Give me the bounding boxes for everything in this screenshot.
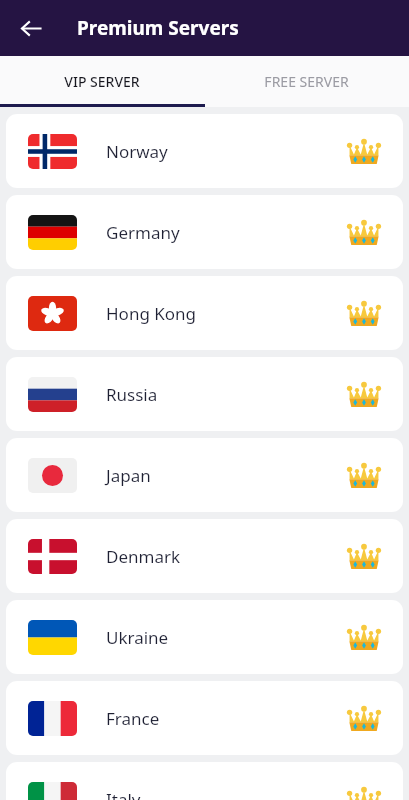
button[interactable]: Ukraine [6,600,403,674]
button[interactable]: VIP SERVER [0,56,204,107]
staticText: Russia [106,383,158,406]
staticText: Japan [106,464,151,487]
staticText: Germany [106,221,180,244]
staticText: Italy [106,788,141,800]
staticText: Premium Servers [77,15,239,41]
button[interactable]: Italy [6,762,403,800]
staticText: Ukraine [106,626,169,649]
staticText: FREE SERVER [264,72,349,91]
button[interactable]: FREE SERVER [204,56,409,107]
staticText: Hong Kong [106,302,197,325]
button[interactable]: France [6,681,403,755]
staticText: Norway [106,140,168,163]
button[interactable]: Russia [6,357,403,431]
button[interactable]: Hong Kong [6,276,403,350]
staticText: France [106,707,160,730]
button[interactable]: Germany [6,195,403,269]
button[interactable]: Norway [6,114,403,188]
button[interactable]: Back [8,5,54,51]
button[interactable]: Denmark [6,519,403,593]
staticText: VIP SERVER [64,72,140,91]
staticText: Denmark [106,545,181,568]
button[interactable]: Japan [6,438,403,512]
